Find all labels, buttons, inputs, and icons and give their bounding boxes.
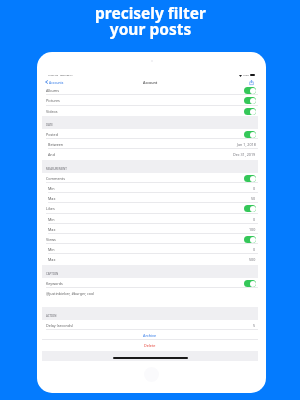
- button[interactable]: Delete: [42, 340, 258, 351]
- button[interactable]: Keywords: [42, 278, 258, 288]
- staticText: Videos: [46, 109, 58, 114]
- button[interactable]: Toggle: [244, 280, 256, 287]
- staticText: 12:00 AM Mon Feb 17: [48, 74, 73, 77]
- button[interactable]: Min: [42, 244, 258, 254]
- button[interactable]: Max: [42, 254, 258, 265]
- staticText: precisely filter your posts: [95, 2, 206, 40]
- staticText: Posted: [46, 132, 58, 137]
- button[interactable]: Toggle: [244, 108, 256, 115]
- staticText: ACTION: [46, 314, 57, 318]
- staticText: Jan 1, 2018: [237, 142, 256, 147]
- button[interactable]: Between: [42, 139, 258, 149]
- staticText: Archive: [143, 333, 157, 338]
- button[interactable]: Toggle: [244, 87, 256, 94]
- staticText: MEASUREMENT: [46, 167, 67, 171]
- button[interactable]: Toggle: [244, 175, 256, 182]
- staticText: Max: [48, 196, 56, 201]
- staticText: Accounts: [49, 80, 64, 84]
- button[interactable]: Views: [42, 234, 258, 244]
- button[interactable]: Max: [42, 224, 258, 234]
- staticText: 0: [253, 186, 256, 191]
- button[interactable]: Accounts: [45, 79, 64, 85]
- button[interactable]: Min: [42, 183, 258, 193]
- staticText: 5: [253, 323, 256, 328]
- staticText: Min: [48, 247, 55, 252]
- staticText: Dec 31, 2019: [233, 152, 256, 157]
- staticText: Comments: [46, 176, 65, 181]
- button[interactable]: Share: [248, 79, 254, 85]
- button[interactable]: Posted: [42, 129, 258, 139]
- button[interactable]: Min: [42, 214, 258, 224]
- staticText: CAPTION: [46, 272, 59, 276]
- button[interactable]: Toggle: [244, 205, 256, 212]
- button[interactable]: Toggle: [244, 236, 256, 243]
- staticText: Max: [48, 257, 56, 262]
- staticText: Albums: [46, 88, 60, 93]
- staticText: 100%: [243, 74, 249, 77]
- staticText: Delay (seconds): [46, 323, 74, 328]
- staticText: Between: [48, 142, 64, 147]
- staticText: 100: [249, 227, 256, 232]
- button[interactable]: Max: [42, 193, 258, 203]
- staticText: Likes: [46, 206, 55, 211]
- staticText: DATE: [46, 123, 53, 127]
- button[interactable]: And: [42, 149, 258, 160]
- button[interactable]: Comments: [42, 173, 258, 183]
- button[interactable]: Pictures: [42, 95, 258, 106]
- button[interactable]: Toggle: [244, 131, 256, 138]
- button[interactable]: Archive: [42, 330, 258, 340]
- button[interactable]: Likes: [42, 203, 258, 214]
- staticText: Min: [48, 186, 55, 191]
- staticText: @justinbieber, #burger, cool: [46, 291, 95, 296]
- staticText: Account: [143, 80, 158, 85]
- button[interactable]: Delay (seconds): [42, 320, 258, 330]
- button[interactable]: Videos: [42, 106, 258, 116]
- staticText: And: [48, 152, 55, 157]
- staticText: Max: [48, 227, 56, 232]
- staticText: Pictures: [46, 98, 60, 103]
- staticText: 0: [253, 247, 256, 252]
- button[interactable]: Albums: [42, 85, 258, 95]
- button[interactable]: Toggle: [244, 97, 256, 104]
- staticText: 0: [253, 217, 256, 222]
- staticText: Keywords: [46, 281, 63, 286]
- staticText: 50: [251, 196, 256, 201]
- staticText: Min: [48, 217, 55, 222]
- button[interactable]: @justinbieber, #burger, cool: [42, 288, 258, 307]
- staticText: Views: [46, 237, 56, 242]
- staticText: 500: [249, 257, 256, 262]
- staticText: Delete: [144, 343, 156, 348]
